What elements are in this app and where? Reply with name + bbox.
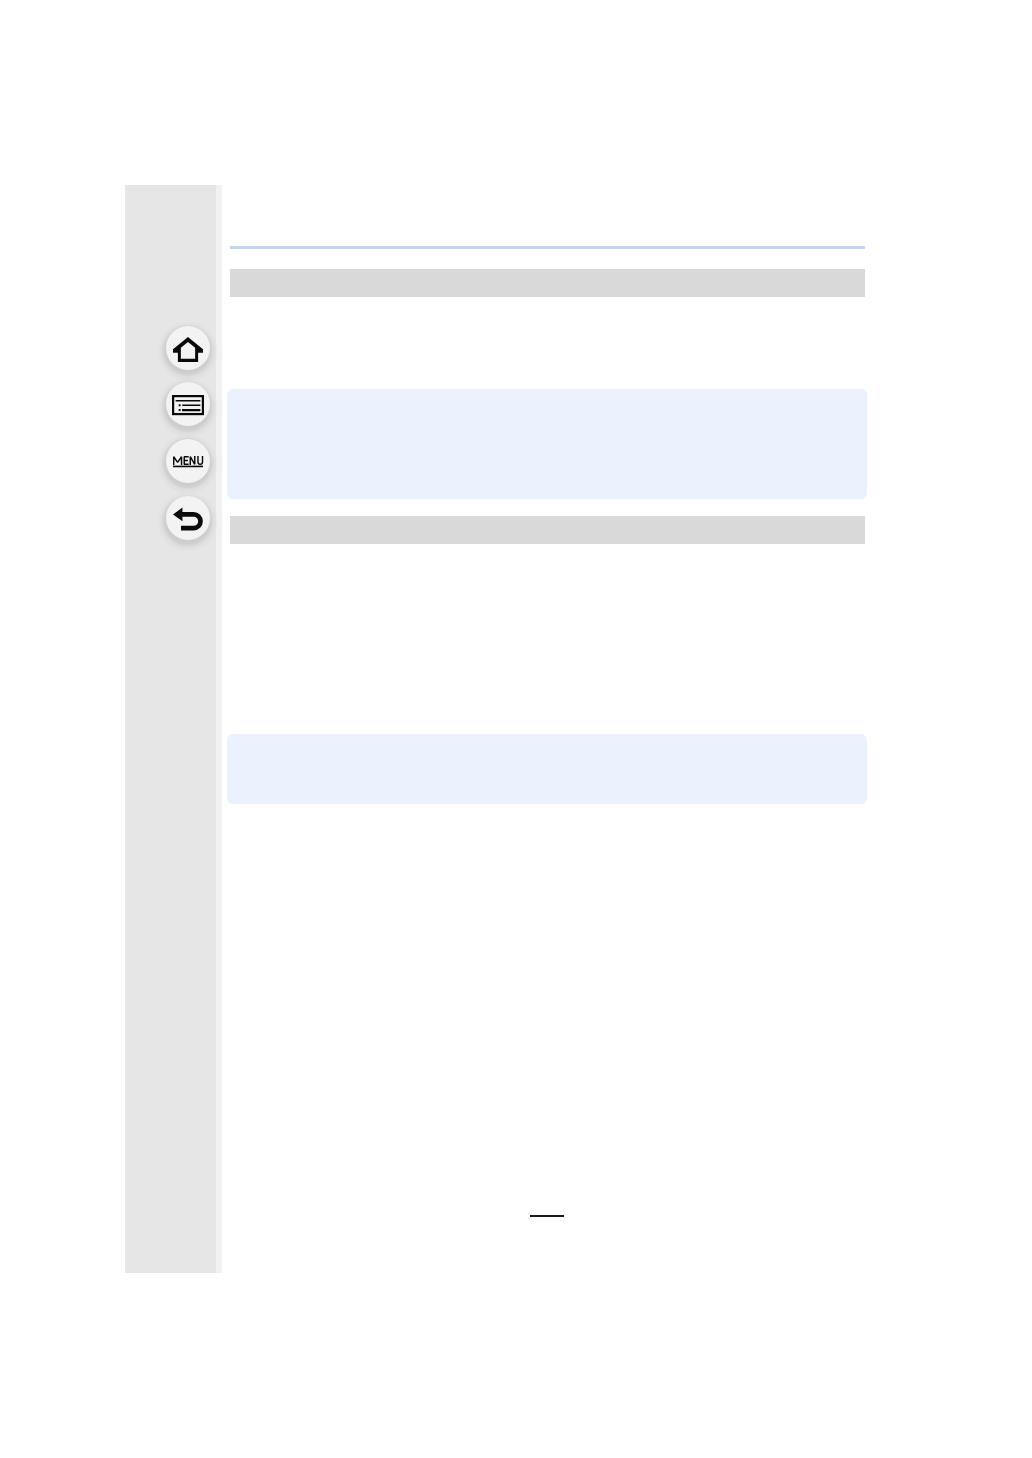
button[interactable]: Table of contents <box>166 382 210 426</box>
button[interactable]: Menu <box>166 439 210 483</box>
button[interactable]: Back <box>166 496 210 540</box>
button[interactable]: Home <box>166 326 210 370</box>
